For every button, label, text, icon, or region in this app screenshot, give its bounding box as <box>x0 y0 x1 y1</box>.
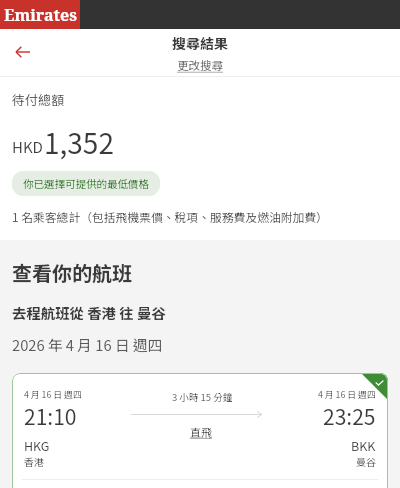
button[interactable]: 直飛 <box>190 424 212 440</box>
staticText: 曼谷 <box>356 454 376 468</box>
staticText: BKK <box>351 436 376 454</box>
staticText: Emirates <box>4 4 77 26</box>
button[interactable]: 更改搜尋 <box>177 57 223 74</box>
staticText: 你已選擇可提供的最低價格 <box>23 176 149 191</box>
button[interactable]: Emirates home <box>0 0 80 29</box>
staticText: 3 小時 15 分鐘 <box>172 390 233 404</box>
staticText: HKD <box>12 136 43 158</box>
staticText: 香港 <box>24 454 44 468</box>
staticText: 待付總額 <box>12 90 65 109</box>
button[interactable]: Back <box>1 30 45 74</box>
button[interactable]: 你已選擇可提供的最低價格 <box>12 171 160 196</box>
staticText: HKG <box>24 436 50 454</box>
staticText: 23:25 <box>323 401 376 431</box>
staticText: 查看你的航班 <box>12 258 132 287</box>
staticText: 4 月 16 日 週四 <box>318 388 376 401</box>
staticText: 21:10 <box>24 401 77 431</box>
staticText: 4 月 16 日 週四 <box>24 388 82 401</box>
staticText: 1,352 <box>44 122 114 163</box>
button[interactable]: 4 月 16 日 週四 <box>12 373 388 488</box>
staticText: 搜尋結果 <box>172 33 228 53</box>
staticText: 去程航班從 香港 往 曼谷 <box>12 302 166 323</box>
staticText: 2026 年 4 月 16 日 週四 <box>12 334 163 355</box>
staticText: 1 名乘客總計（包括飛機票價、稅項、服務費及燃油附加費） <box>12 208 328 225</box>
